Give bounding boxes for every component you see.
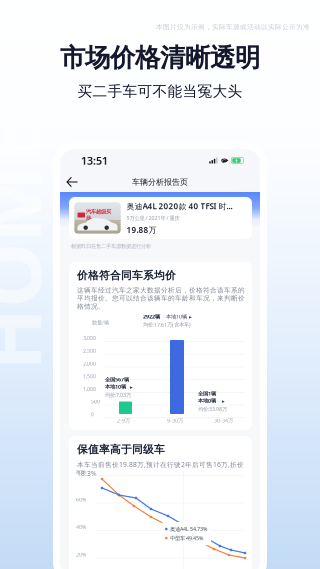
staticText: 3,000: [83, 334, 96, 342]
staticText: 奥迪A4L 54.73%: [170, 525, 207, 533]
staticText: 全国1辆: [198, 390, 216, 397]
staticText: 根据昨日在售二手车源数据进行分析: [71, 243, 151, 250]
staticText: 1,000: [83, 385, 96, 392]
staticText: HOME: [0, 190, 135, 300]
staticText: 80%: [76, 468, 86, 476]
staticText: 19.88万: [126, 224, 156, 235]
staticText: 5万公里 / 2021年 / 重庆: [126, 214, 179, 222]
staticText: 40%: [76, 523, 86, 531]
staticText: 2-9万: [117, 417, 130, 424]
staticText: 500: [91, 398, 100, 405]
staticText: 20%: [76, 551, 86, 558]
staticText: 2922辆: [143, 313, 160, 320]
staticText: 均价:17.61万(含本车): [143, 321, 191, 328]
staticText: 1,500: [83, 373, 96, 380]
staticText: |: [161, 313, 164, 320]
staticText: 买二手车可不能当冤大头: [77, 82, 242, 100]
staticText: 车辆分析报告页: [132, 177, 188, 187]
staticText: 30-34万: [214, 417, 233, 424]
staticText: 本图片仅为示例，实际车源或活动以实际公示为准: [156, 23, 310, 31]
staticText: 本地10辆 ▸: [166, 313, 192, 320]
staticText: 保值率高于同级车: [77, 443, 165, 456]
staticText: 13:51: [81, 153, 108, 168]
staticText: 价格符合同车系均价: [77, 269, 176, 282]
staticText: 本地10辆 ▸: [105, 383, 133, 390]
staticText: 中型车 49.45%: [170, 535, 203, 542]
staticText: 本车当前售价19.88万,预计在行驶2年后可售16万,折价18.3%: [77, 460, 244, 478]
staticText: 全国567辆: [105, 376, 129, 383]
staticText: 本地0辆 ▸: [198, 397, 225, 404]
button[interactable]: 汽车超级买场: [69, 197, 252, 239]
staticText: 0: [91, 411, 94, 418]
staticText: 9-30万: [167, 417, 183, 424]
staticText: 2,000: [83, 360, 96, 367]
staticText: 2,500: [83, 347, 96, 354]
staticText: 奥迪A4L 2020款 40 TFSI 时...: [126, 201, 232, 211]
staticText: 市场价格清晰透明: [60, 42, 260, 73]
staticText: 这辆车经过汽车之家大数据分析后，价格符合该车系的平均报价。您可以结合该辆车的车龄…: [77, 286, 245, 311]
staticText: 均价:33.98万: [198, 405, 227, 412]
staticText: 数量/辆: [92, 319, 109, 326]
button[interactable]: 返回: [60, 172, 85, 192]
staticText: 均价:7.03万: [105, 391, 131, 398]
staticText: 60%: [76, 496, 86, 503]
staticText: 汽车超级买场: [86, 208, 111, 222]
